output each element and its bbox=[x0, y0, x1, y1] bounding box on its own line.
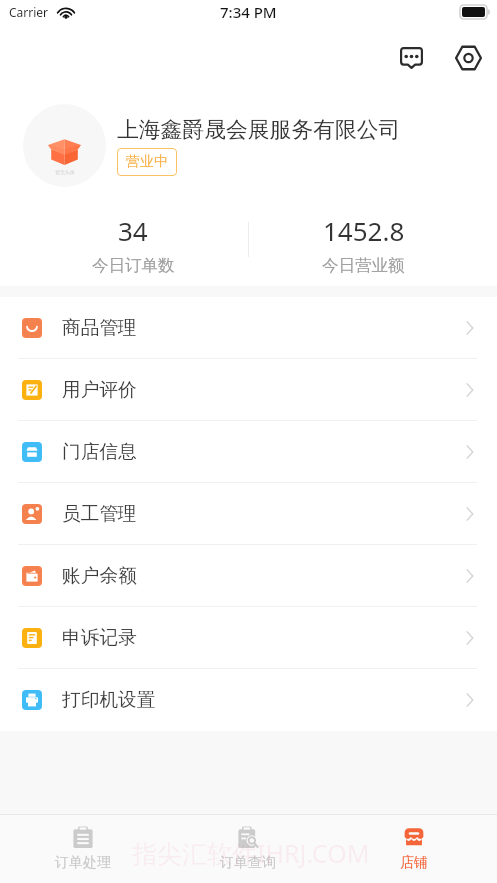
staticText: 店铺 bbox=[400, 854, 428, 872]
staticText: 申诉记录 bbox=[62, 626, 137, 650]
button[interactable]: 订单查询 bbox=[165, 815, 331, 883]
button[interactable]: 账户余额 bbox=[0, 545, 497, 607]
staticText: 订单处理 bbox=[55, 854, 111, 872]
staticText: 账户余额 bbox=[62, 564, 137, 588]
staticText: 员工管理 bbox=[62, 502, 137, 526]
button[interactable]: Settings bbox=[447, 35, 489, 81]
button[interactable]: 订单处理 bbox=[0, 815, 165, 883]
staticText: 今日订单数 bbox=[92, 255, 175, 276]
staticText: 订单查询 bbox=[220, 854, 276, 872]
staticText: 今日营业额 bbox=[322, 255, 405, 276]
button[interactable]: 申诉记录 bbox=[0, 607, 497, 669]
staticText: 7:34 PM bbox=[220, 2, 277, 22]
staticText: 暂无头像 bbox=[55, 169, 75, 175]
button[interactable]: Messages bbox=[390, 35, 432, 81]
staticText: 门店信息 bbox=[62, 440, 137, 464]
button[interactable]: 门店信息 bbox=[0, 421, 497, 483]
staticText: 34 bbox=[118, 213, 148, 248]
staticText: 用户评价 bbox=[62, 378, 137, 402]
staticText: 商品管理 bbox=[62, 316, 137, 340]
staticText: Carrier bbox=[9, 4, 49, 20]
button[interactable]: 员工管理 bbox=[0, 483, 497, 545]
button[interactable]: 打印机设置 bbox=[0, 669, 497, 731]
button[interactable]: 店铺 bbox=[331, 815, 497, 883]
button[interactable]: 商品管理 bbox=[0, 297, 497, 359]
button[interactable]: 1452.8 bbox=[248, 199, 479, 289]
button[interactable]: 用户评价 bbox=[0, 359, 497, 421]
staticText: 1452.8 bbox=[323, 213, 405, 248]
staticText: 营业中 bbox=[126, 153, 168, 171]
button[interactable]: 34 bbox=[18, 199, 248, 289]
staticText: 打印机设置 bbox=[62, 688, 156, 712]
staticText: 指尖汇软件IHRJ.COM bbox=[132, 836, 370, 870]
staticText: 上海鑫爵晟会展服务有限公司 bbox=[117, 116, 401, 143]
button[interactable]: 营业中 bbox=[117, 148, 177, 176]
